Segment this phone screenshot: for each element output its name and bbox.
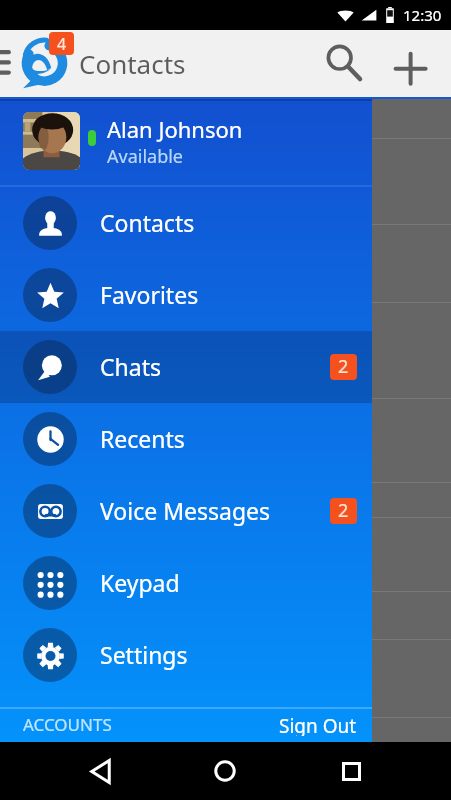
staticText: Available [107,144,183,169]
staticText: Contacts [100,207,195,238]
staticText: Alan Johnson [107,114,243,144]
staticText: Favorites [100,279,199,310]
staticText: Settings [100,639,188,670]
staticText: 12:30 [403,5,442,25]
staticText: ACCOUNTS [23,713,112,736]
staticText: Chats [100,351,161,382]
button[interactable]: Recents [0,403,372,475]
staticText: Contacts [79,46,186,81]
button[interactable]: Contacts [0,187,372,259]
button[interactable]: Alan Johnson [0,101,372,185]
button[interactable]: Chats [0,331,372,403]
button[interactable]: Keypad [0,547,372,619]
button[interactable]: Recent apps [309,742,393,800]
button[interactable]: Sign Out [271,709,372,742]
staticText: 4 [57,33,67,55]
button[interactable]: Voice Messages [0,475,372,547]
staticText: Keypad [100,567,180,598]
staticText: 2 [338,354,349,379]
staticText: Sign Out [279,713,357,736]
button[interactable]: Search [316,40,364,88]
button[interactable]: ACCOUNTS [0,709,120,742]
staticText: 2 [338,498,349,523]
button[interactable]: Open navigation drawer [0,45,10,73]
button[interactable]: Favorites [0,259,372,331]
button[interactable]: Add contact [387,45,435,85]
button[interactable]: Home [183,742,267,800]
button[interactable]: Settings [0,619,372,691]
staticText: Voice Messages [100,495,271,526]
staticText: Recents [100,423,185,454]
button[interactable]: Back [58,742,142,800]
